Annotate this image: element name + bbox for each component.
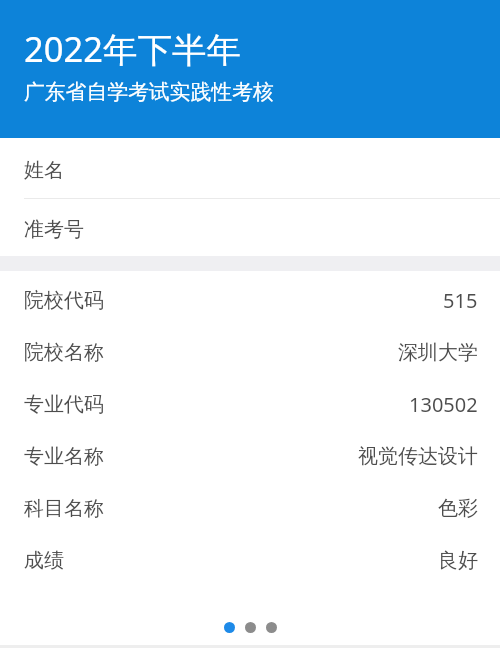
staticText: 专业名称 [24, 444, 104, 469]
button[interactable]: 成绩 [0, 531, 500, 584]
button[interactable]: 院校名称 [0, 323, 500, 375]
button[interactable]: 准考号 [0, 199, 500, 256]
button[interactable]: Page 2 [245, 622, 256, 633]
button[interactable]: Page 1 [224, 622, 235, 633]
button[interactable]: 院校代码 [0, 271, 500, 323]
staticText: 院校代码 [24, 288, 104, 313]
staticText: 515 [443, 287, 478, 314]
staticText: 院校名称 [24, 340, 104, 365]
staticText: 成绩 [24, 548, 64, 573]
staticText: 科目名称 [24, 496, 104, 521]
staticText: 深圳大学 [398, 340, 478, 365]
button[interactable]: 专业代码 [0, 375, 500, 427]
staticText: 准考号 [24, 217, 84, 242]
staticText: 专业代码 [24, 392, 104, 417]
staticText: 色彩 [438, 496, 478, 521]
staticText: 130502 [409, 391, 478, 418]
staticText: 视觉传达设计 [358, 444, 478, 469]
staticText: 广东省自学考试实践性考核 [24, 79, 274, 105]
button[interactable]: 姓名 [0, 138, 500, 198]
button[interactable]: 科目名称 [0, 479, 500, 531]
staticText: 姓名 [24, 158, 64, 183]
button[interactable]: 专业名称 [0, 427, 500, 479]
button[interactable]: Page 3 [266, 622, 277, 633]
staticText: 2022年下半年 [24, 25, 241, 72]
staticText: 良好 [438, 548, 478, 573]
